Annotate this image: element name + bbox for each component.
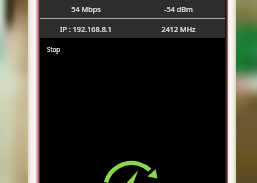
staticText: -54 dBm xyxy=(164,4,193,14)
staticText: Stop xyxy=(47,45,61,53)
staticText: 54 Mbps xyxy=(71,4,101,14)
button[interactable]: 2412 MHz xyxy=(132,19,225,38)
staticText: IP : 192.168.8.1 xyxy=(60,24,112,34)
button[interactable]: Stop xyxy=(40,38,225,60)
button[interactable]: IP : 192.168.8.1 xyxy=(40,19,132,38)
button[interactable]: 54 Mbps xyxy=(40,0,132,18)
other: Refresh scan xyxy=(0,0,257,183)
button[interactable]: -54 dBm xyxy=(132,0,225,18)
staticText: 2412 MHz xyxy=(161,24,196,34)
